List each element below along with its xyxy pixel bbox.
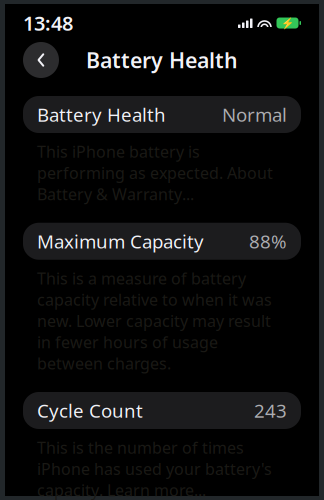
button[interactable]: Back (23, 42, 59, 78)
staticText: Normal (222, 102, 287, 127)
staticText: Battery Health (86, 46, 238, 74)
staticText: Maximum Capacity (37, 229, 204, 254)
staticText: This is the number of times iPhone has u… (37, 437, 272, 500)
button[interactable]: Cycle Count (23, 392, 301, 429)
staticText: 88% (249, 229, 287, 254)
staticText: 13:48 (23, 10, 73, 36)
staticText: Cycle Count (37, 398, 143, 423)
button[interactable]: Maximum Capacity (23, 223, 301, 260)
staticText: This is a measure of battery capacity re… (37, 268, 272, 374)
button[interactable]: Battery Health (23, 96, 301, 133)
staticText: Battery Health (37, 102, 166, 127)
staticText: ⚡ (281, 17, 294, 29)
staticText: This iPhone battery is performing as exp… (37, 141, 273, 205)
staticText: 243 (254, 398, 287, 423)
